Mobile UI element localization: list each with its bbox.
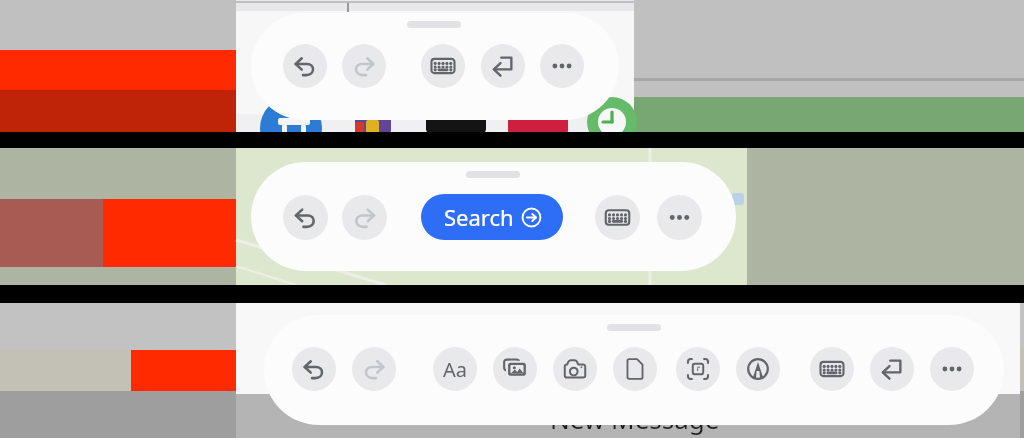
button[interactable]: Return [870,347,914,391]
button[interactable]: Undo [292,347,336,391]
button[interactable]: Camera [553,347,597,391]
button[interactable]: Redo [342,195,387,240]
button[interactable]: Scan [676,347,720,391]
button[interactable]: More options [540,44,584,88]
button[interactable]: Keyboard [595,195,640,240]
staticText: Aa [443,356,467,383]
button[interactable]: Return [481,44,525,88]
button[interactable]: Draw [736,347,780,391]
button[interactable]: Photos [493,347,537,391]
button[interactable]: Keyboard [810,347,854,391]
button[interactable]: Keyboard [421,44,465,88]
button[interactable]: More options [657,195,702,240]
button[interactable]: Undo [283,195,328,240]
staticText: Search [444,202,514,232]
button[interactable]: Undo [283,44,327,88]
button[interactable]: Search [421,194,563,240]
button[interactable]: Text formatting [433,347,477,391]
button[interactable]: Attach file [613,347,657,391]
button[interactable]: Redo [342,44,386,88]
button[interactable]: More options [930,347,974,391]
button[interactable]: Redo [352,347,396,391]
staticText: New Message [550,401,720,436]
